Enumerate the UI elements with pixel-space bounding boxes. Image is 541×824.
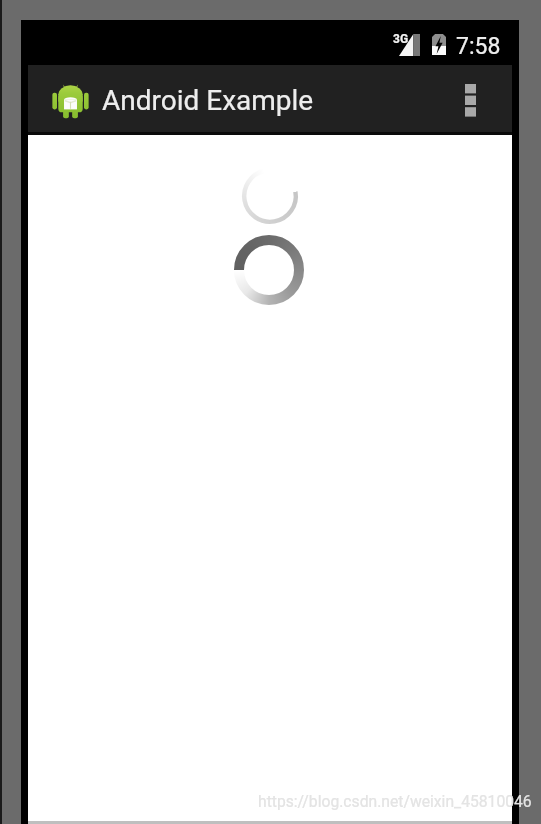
staticText: Android Example [102, 84, 314, 117]
button[interactable]: More options [442, 65, 498, 135]
staticText: https://blog.csdn.net/weixin_45810046 [258, 792, 532, 810]
staticText: 7:58 [456, 33, 501, 60]
staticText: 3G [393, 32, 409, 46]
